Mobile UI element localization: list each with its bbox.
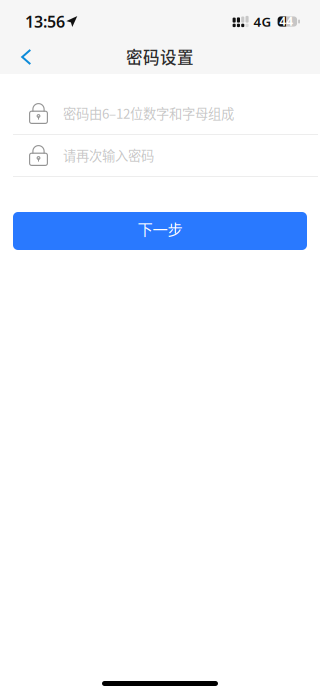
- button[interactable]: 下一步: [13, 212, 307, 250]
- staticText: 下一步: [137, 217, 182, 240]
- staticText: 密码由6–12位数字和字母组成: [63, 103, 234, 123]
- button[interactable]: 密码由6–12位数字和字母组成: [0, 93, 320, 134]
- staticText: 13:56: [25, 11, 65, 32]
- staticText: 4G: [254, 13, 272, 30]
- button[interactable]: Back: [0, 40, 47, 74]
- staticText: 44: [279, 13, 293, 29]
- staticText: 密码设置: [126, 44, 194, 68]
- staticText: 请再次输入密码: [63, 145, 154, 165]
- button[interactable]: 请再次输入密码: [0, 135, 320, 176]
